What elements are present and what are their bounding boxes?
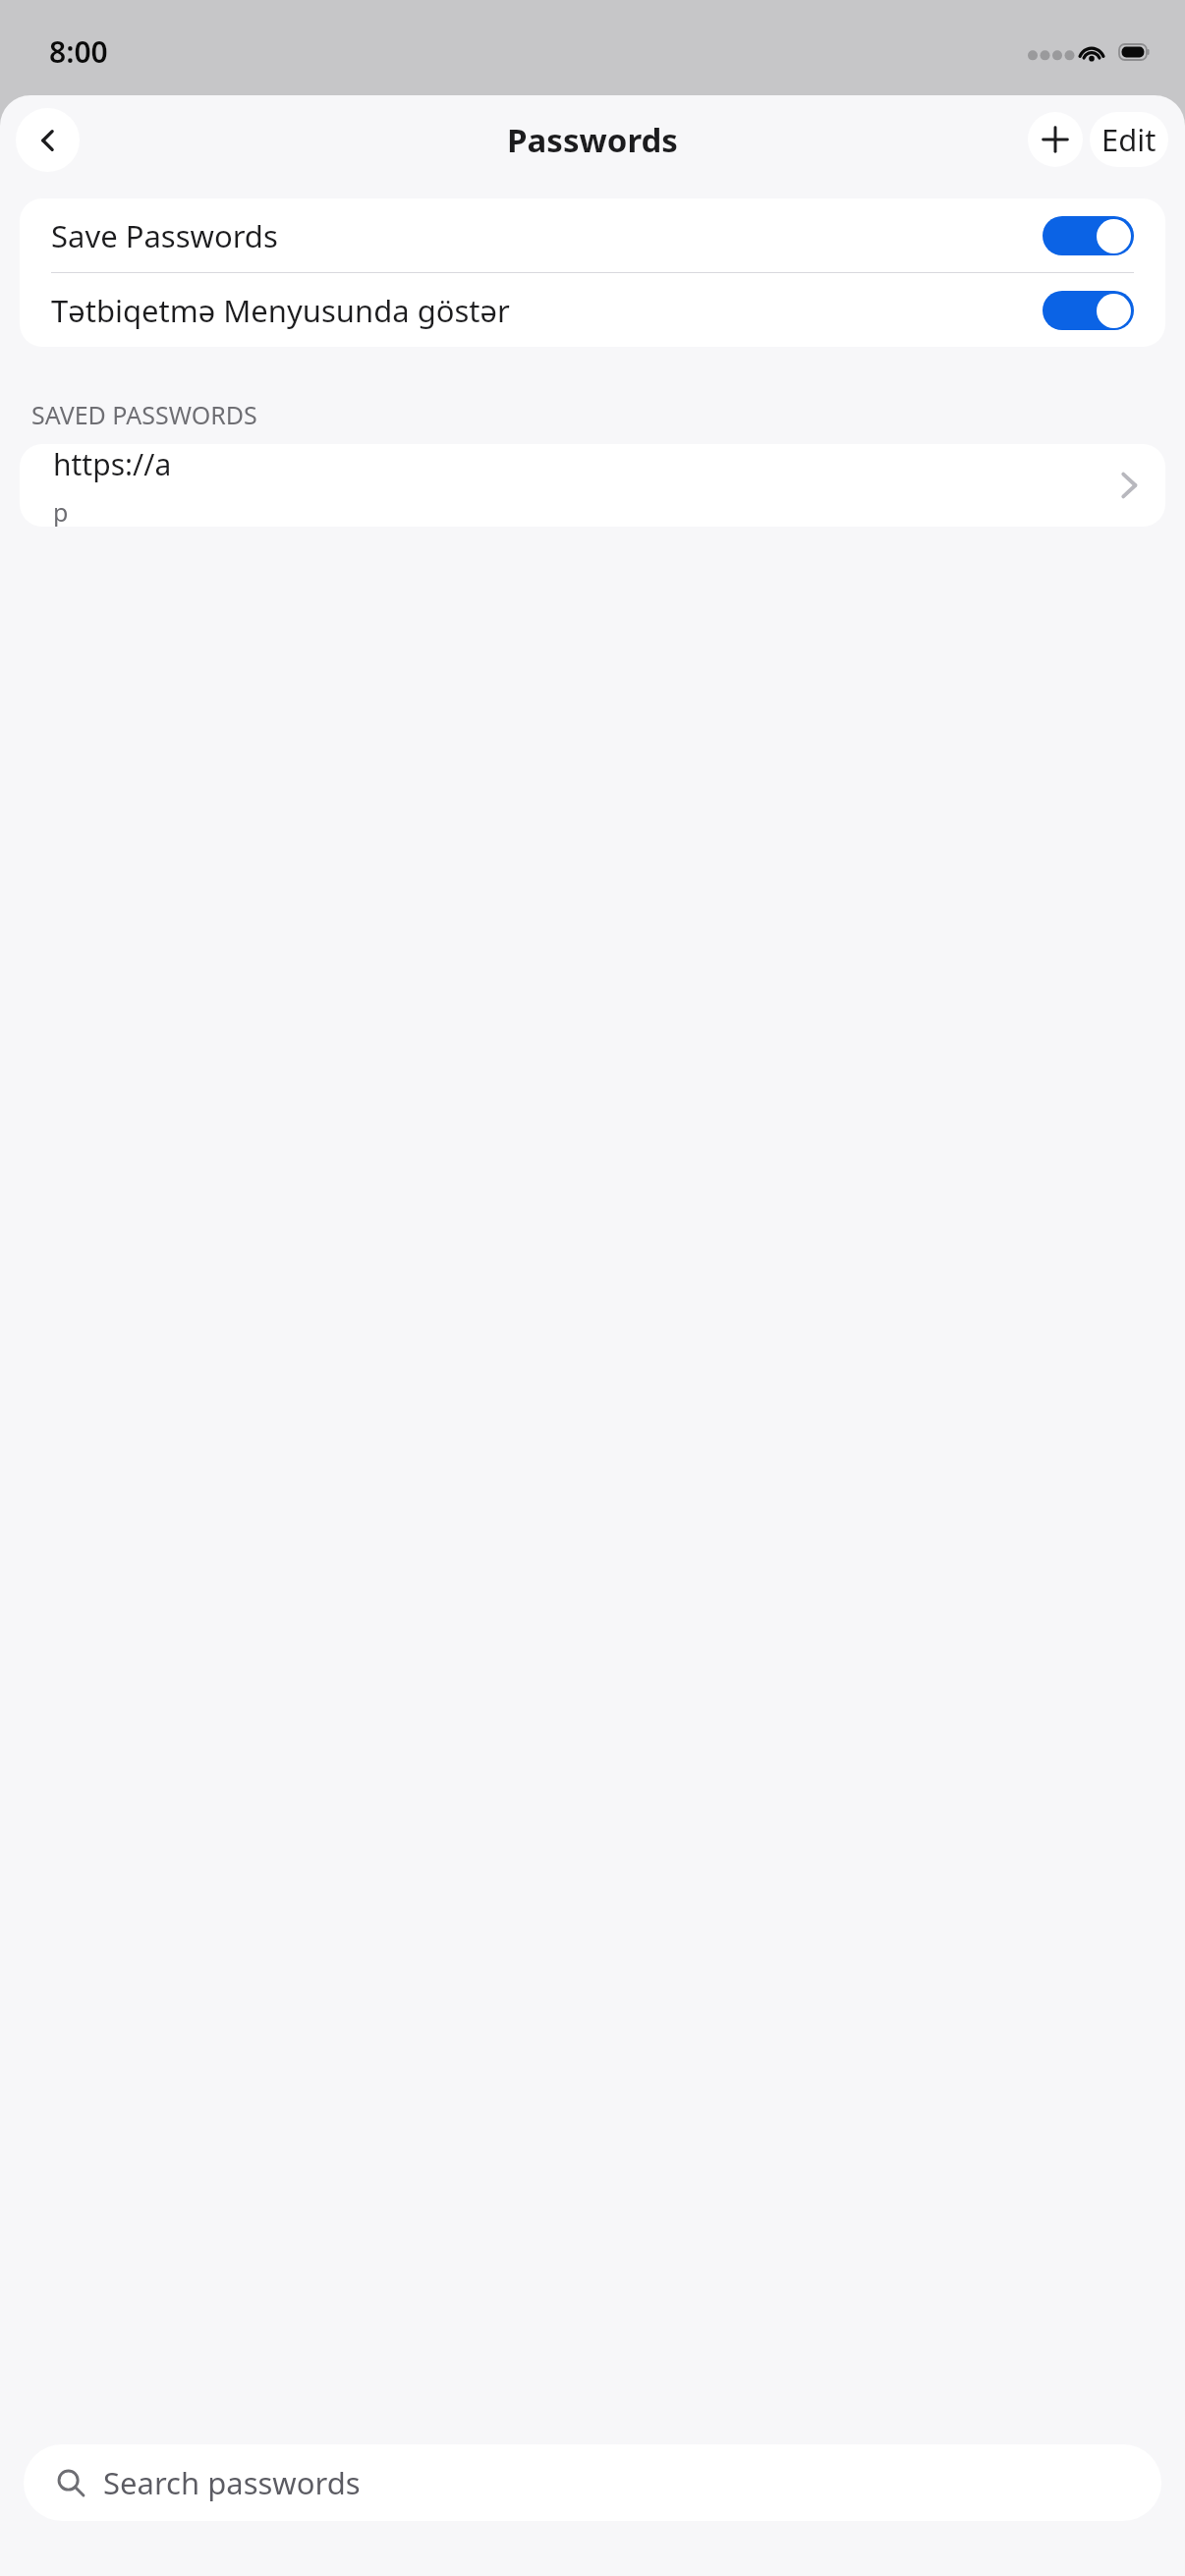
button[interactable]: Tətbiqetmə Menyusunda göstər	[20, 273, 1165, 347]
staticText: Search passwords	[103, 2462, 361, 2503]
staticText: SAVED PASSWORDS	[31, 398, 257, 431]
button[interactable]: Add password	[1028, 112, 1083, 167]
staticText: Edit	[1101, 119, 1157, 160]
button[interactable]: Save Passwords	[20, 198, 1165, 272]
button[interactable]: Back	[16, 108, 80, 172]
staticText: https://a	[53, 444, 172, 484]
button[interactable]: Toggle on	[1043, 291, 1134, 330]
button[interactable]: Edit	[1090, 112, 1168, 167]
staticText: Tətbiqetmə Menyusunda göstər	[51, 290, 1043, 331]
staticText: Save Passwords	[51, 215, 1043, 256]
staticText: 8:00	[49, 31, 108, 72]
staticText: Passwords	[507, 118, 678, 162]
button[interactable]: https://a	[20, 444, 1165, 527]
button[interactable]: Toggle on	[1043, 216, 1134, 255]
button[interactable]: Search passwords	[24, 2444, 1161, 2521]
staticText: p	[53, 495, 69, 527]
